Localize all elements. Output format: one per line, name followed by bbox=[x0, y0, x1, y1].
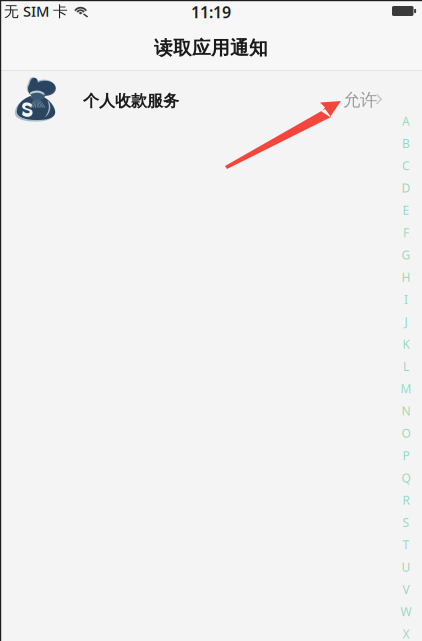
staticText: X bbox=[402, 626, 409, 641]
staticText: P bbox=[402, 447, 409, 463]
staticText: V bbox=[402, 581, 409, 597]
staticText: A bbox=[402, 113, 410, 129]
staticText: Q bbox=[401, 470, 410, 486]
staticText: 读取应用通知 bbox=[154, 36, 268, 59]
staticText: 个人收款服务 bbox=[83, 91, 179, 111]
staticText: W bbox=[400, 604, 411, 619]
staticText: H bbox=[401, 269, 410, 285]
staticText: U bbox=[401, 559, 410, 575]
staticText: S bbox=[402, 514, 409, 530]
staticText: R bbox=[402, 492, 409, 508]
staticText: K bbox=[402, 336, 409, 352]
staticText: F bbox=[403, 224, 409, 240]
staticText: O bbox=[401, 425, 410, 441]
staticText: T bbox=[402, 537, 409, 553]
staticText: J bbox=[404, 314, 407, 330]
staticText: G bbox=[401, 247, 410, 263]
staticText: I bbox=[404, 291, 408, 307]
staticText: D bbox=[401, 180, 410, 196]
staticText: 11:19 bbox=[191, 1, 231, 23]
staticText: M bbox=[400, 381, 411, 396]
staticText: E bbox=[402, 202, 409, 218]
staticText: 允许 bbox=[343, 89, 377, 111]
button[interactable]: 个人收款服务 bbox=[0, 71, 422, 129]
staticText: N bbox=[401, 403, 410, 419]
staticText: 无 SIM 卡 bbox=[4, 1, 68, 21]
staticText: L bbox=[403, 358, 409, 374]
staticText: C bbox=[402, 158, 410, 173]
staticText: B bbox=[402, 135, 410, 151]
